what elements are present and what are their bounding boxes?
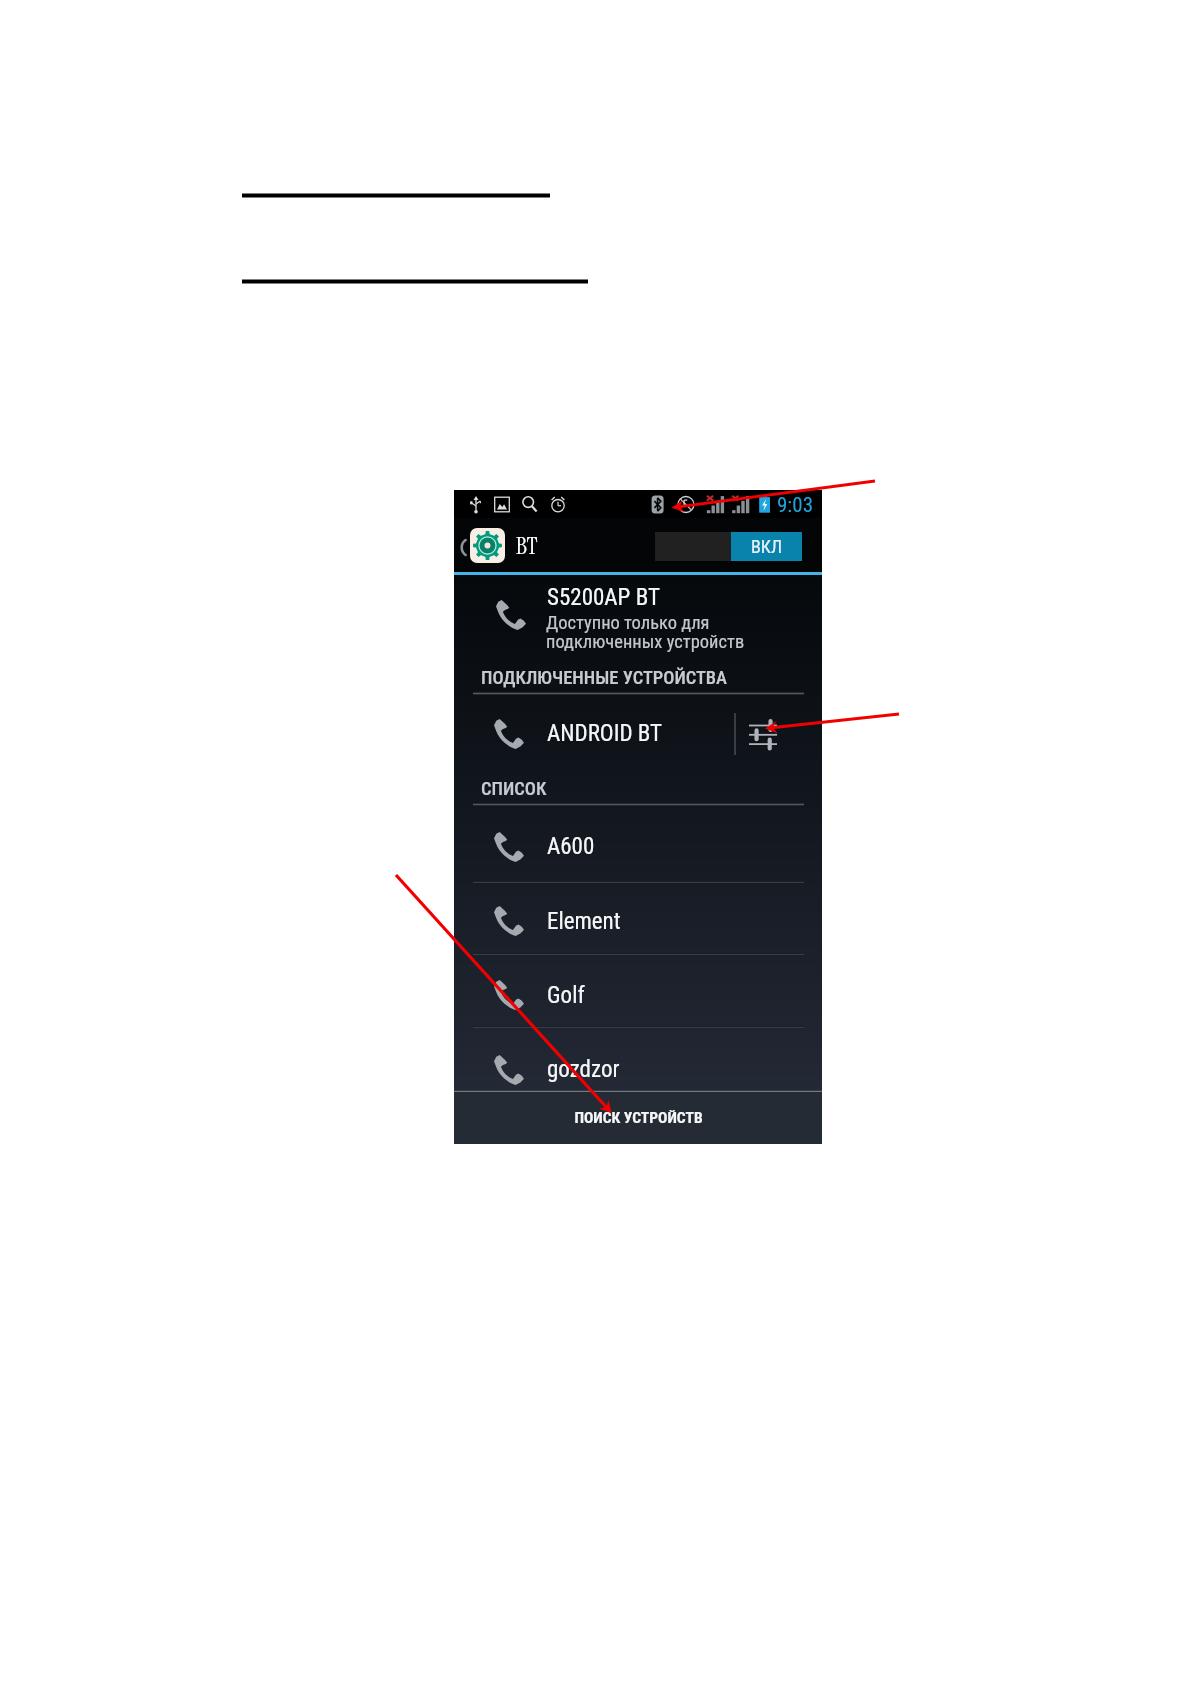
button[interactable]: ANDROID BT	[454, 694, 822, 774]
staticText: S5200AP BT	[547, 584, 660, 611]
staticText: Доступно только для	[546, 612, 710, 634]
staticText: ANDROID BT	[547, 720, 663, 747]
staticText: ПОДКЛЮЧЕННЫЕ УСТРОЙСТВА	[481, 667, 728, 689]
button[interactable]: Device settings	[736, 707, 790, 761]
staticText: BT	[516, 531, 538, 561]
staticText: ПОИСК УСТРОЙСТВ	[574, 1109, 703, 1127]
staticText: gozdzor	[547, 1056, 620, 1083]
button[interactable]: ПОИСК УСТРОЙСТВ	[454, 1092, 822, 1144]
staticText: ВКЛ	[751, 536, 782, 557]
button[interactable]: ВКЛ	[655, 532, 802, 561]
button[interactable]: Back	[454, 518, 508, 572]
staticText: СПИСОК	[481, 778, 547, 800]
staticText: 9:03	[777, 493, 814, 518]
button[interactable]: S5200AP BT	[454, 575, 822, 665]
staticText: A600	[547, 833, 595, 860]
button[interactable]: gozdzor	[454, 1028, 822, 1091]
button[interactable]: Element	[454, 883, 822, 953]
button[interactable]: A600	[454, 806, 822, 881]
button[interactable]: Golf	[454, 955, 822, 1026]
staticText: подключенных устройств	[546, 631, 745, 653]
staticText: Golf	[547, 982, 585, 1009]
staticText: Element	[547, 908, 621, 935]
